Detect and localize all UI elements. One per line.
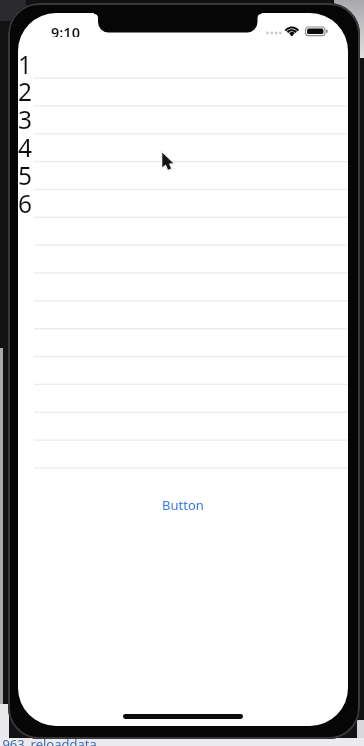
staticText: 5 (18, 159, 33, 187)
staticText: 2 (18, 75, 33, 103)
staticText: 3 (18, 103, 33, 131)
staticText: 4 (18, 131, 33, 159)
button[interactable]: Button (143, 493, 223, 517)
button[interactable]: 5 (18, 161, 348, 189)
button[interactable]: 6 (18, 189, 348, 217)
button[interactable]: 4 (18, 133, 348, 161)
staticText: Button (162, 496, 204, 514)
staticText: 1 (18, 48, 33, 76)
staticText: 1963_reloaddata (0, 735, 97, 746)
staticText: 6 (18, 187, 33, 215)
button[interactable]: 2 (18, 77, 348, 105)
button[interactable]: 1 (18, 50, 348, 78)
staticText: 9:10 (51, 22, 80, 37)
button[interactable]: 3 (18, 105, 348, 133)
